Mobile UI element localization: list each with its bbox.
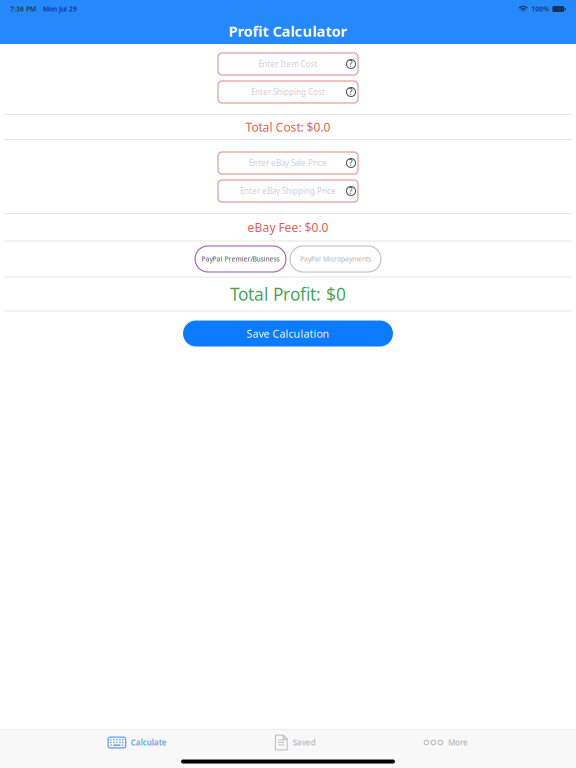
button[interactable]: Save Calculation — [183, 320, 393, 346]
staticText: Enter eBay Shipping Price — [240, 186, 336, 196]
staticText: Profit Calculator — [228, 21, 347, 41]
staticText: ? — [349, 87, 353, 97]
button[interactable]: Enter eBay Sale Price — [218, 152, 358, 174]
button[interactable]: Enter Shipping Cost — [218, 81, 358, 103]
button[interactable]: PayPal Premier/Business — [195, 246, 286, 272]
staticText: Mon Jul 29 — [43, 5, 77, 13]
staticText: Save Calculation — [246, 326, 329, 341]
staticText: Total Profit: $0 — [230, 282, 346, 305]
staticText: Enter Shipping Cost — [251, 87, 325, 97]
staticText: Enter eBay Sale Price — [249, 158, 327, 168]
staticText: eBay Fee: $0.0 — [247, 219, 328, 235]
button[interactable]: Saved — [275, 729, 316, 755]
button[interactable]: Calculate — [108, 729, 167, 755]
staticText: Enter Item Cost — [258, 59, 317, 69]
staticText: Calculate — [131, 737, 167, 748]
button[interactable]: Enter Item Cost — [218, 53, 358, 75]
button[interactable]: Enter eBay Shipping Price — [218, 180, 358, 202]
staticText: PayPal Micropayments — [300, 255, 371, 263]
staticText: ? — [349, 59, 353, 69]
staticText: ? — [349, 158, 353, 168]
staticText: 100% — [531, 5, 549, 13]
staticText: 7:36 PM — [10, 5, 36, 13]
staticText: PayPal Premier/Business — [201, 255, 279, 263]
staticText: Saved — [293, 737, 316, 748]
button[interactable]: PayPal Micropayments — [290, 246, 381, 272]
staticText: More — [448, 737, 468, 748]
staticText: ? — [349, 186, 353, 196]
button[interactable]: More — [424, 729, 468, 755]
staticText: Total Cost: $0.0 — [245, 119, 330, 135]
